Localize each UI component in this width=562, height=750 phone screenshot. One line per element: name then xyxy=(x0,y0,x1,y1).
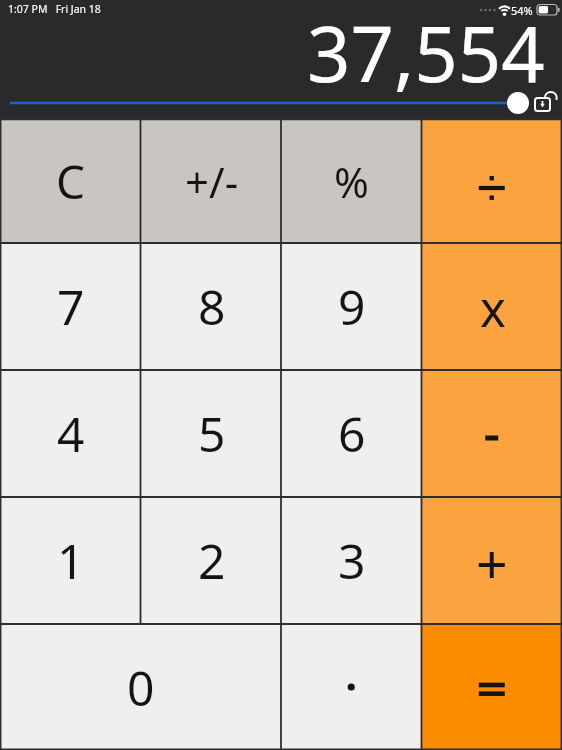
button[interactable] xyxy=(422,370,562,497)
staticText: 7 xyxy=(57,274,85,339)
button[interactable]: +/- xyxy=(141,119,282,243)
button[interactable]: 5 xyxy=(141,370,282,497)
staticText: 1 xyxy=(57,528,85,593)
button[interactable]: 8 xyxy=(141,243,282,370)
staticText: 6 xyxy=(338,401,366,466)
button[interactable] xyxy=(281,624,422,750)
button[interactable]: C xyxy=(0,119,141,243)
staticText: 9 xyxy=(338,274,366,339)
button[interactable]: 4 xyxy=(0,370,141,497)
button[interactable] xyxy=(422,497,562,624)
button[interactable]: 1 xyxy=(0,497,141,624)
button[interactable]: 6 xyxy=(281,370,422,497)
button[interactable]: 0 xyxy=(0,624,281,750)
button[interactable]: 3 xyxy=(281,497,422,624)
staticText: C xyxy=(56,150,86,213)
button[interactable]: % xyxy=(281,119,422,243)
button[interactable]: 2 xyxy=(141,497,282,624)
staticText: +/- xyxy=(185,153,239,210)
button[interactable]: 9 xyxy=(281,243,422,370)
staticText: 8 xyxy=(198,274,226,339)
staticText: 1:07 PM Fri Jan 18 xyxy=(8,2,101,16)
button[interactable]: x xyxy=(422,243,562,370)
staticText: x xyxy=(480,275,506,342)
staticText: 2 xyxy=(198,528,226,593)
staticText: 37,554 xyxy=(307,1,545,105)
button[interactable] xyxy=(422,624,562,750)
staticText: 4 xyxy=(57,401,85,466)
button[interactable]: 7 xyxy=(0,243,141,370)
button[interactable] xyxy=(422,119,562,243)
staticText: 0 xyxy=(127,655,155,720)
staticText: 3 xyxy=(338,528,366,593)
staticText: 5 xyxy=(198,401,226,466)
staticText: 54% xyxy=(511,3,533,18)
staticText: % xyxy=(334,153,369,210)
